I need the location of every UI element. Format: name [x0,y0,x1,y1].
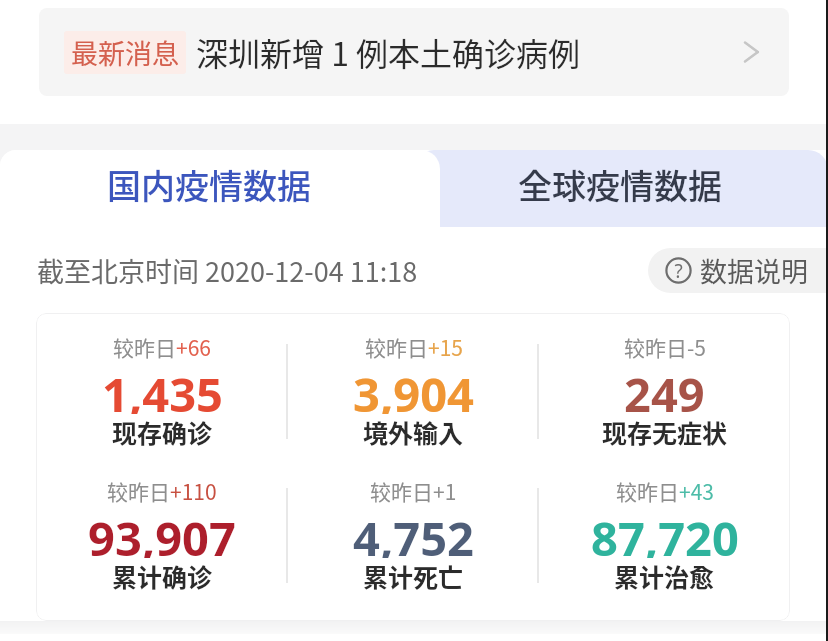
staticText: 国内疫情数据 [107,160,311,209]
staticText: 最新消息 [71,33,179,72]
staticText: 较昨日+43 [616,476,714,506]
button[interactable]: 最新消息 [39,8,789,96]
button[interactable]: 全球疫情数据 [414,150,828,227]
staticText: 249 [624,362,705,414]
staticText: 87,720 [591,506,739,558]
staticText: 境外输入 [363,414,464,450]
staticText: 累计确诊 [112,558,213,594]
staticText: 较昨日+15 [365,332,463,362]
staticText: 较昨日-5 [624,332,706,362]
staticText: 现存无症状 [602,414,728,450]
staticText: 截至北京时间 2020-12-04 11:18 [37,251,418,290]
staticText: 93,907 [88,506,236,558]
staticText: ? [674,258,683,284]
staticText: 全球疫情数据 [518,160,722,209]
staticText: 1,435 [102,362,223,414]
button[interactable]: ? [648,248,828,293]
staticText: 较昨日+1 [370,476,457,506]
staticText: 4,752 [353,506,474,558]
button[interactable]: 查看详情 [729,36,761,68]
staticText: 累计治愈 [614,558,715,594]
staticText: 深圳新增 1 例本土确诊病例 [196,29,581,75]
staticText: 数据说明 [700,251,808,290]
staticText: 现存确诊 [112,414,213,450]
button[interactable]: 国内疫情数据 [0,150,440,227]
staticText: 3,904 [353,362,474,414]
staticText: 较昨日+66 [113,332,211,362]
staticText: 较昨日+110 [107,476,217,506]
staticText: 累计死亡 [363,558,464,594]
